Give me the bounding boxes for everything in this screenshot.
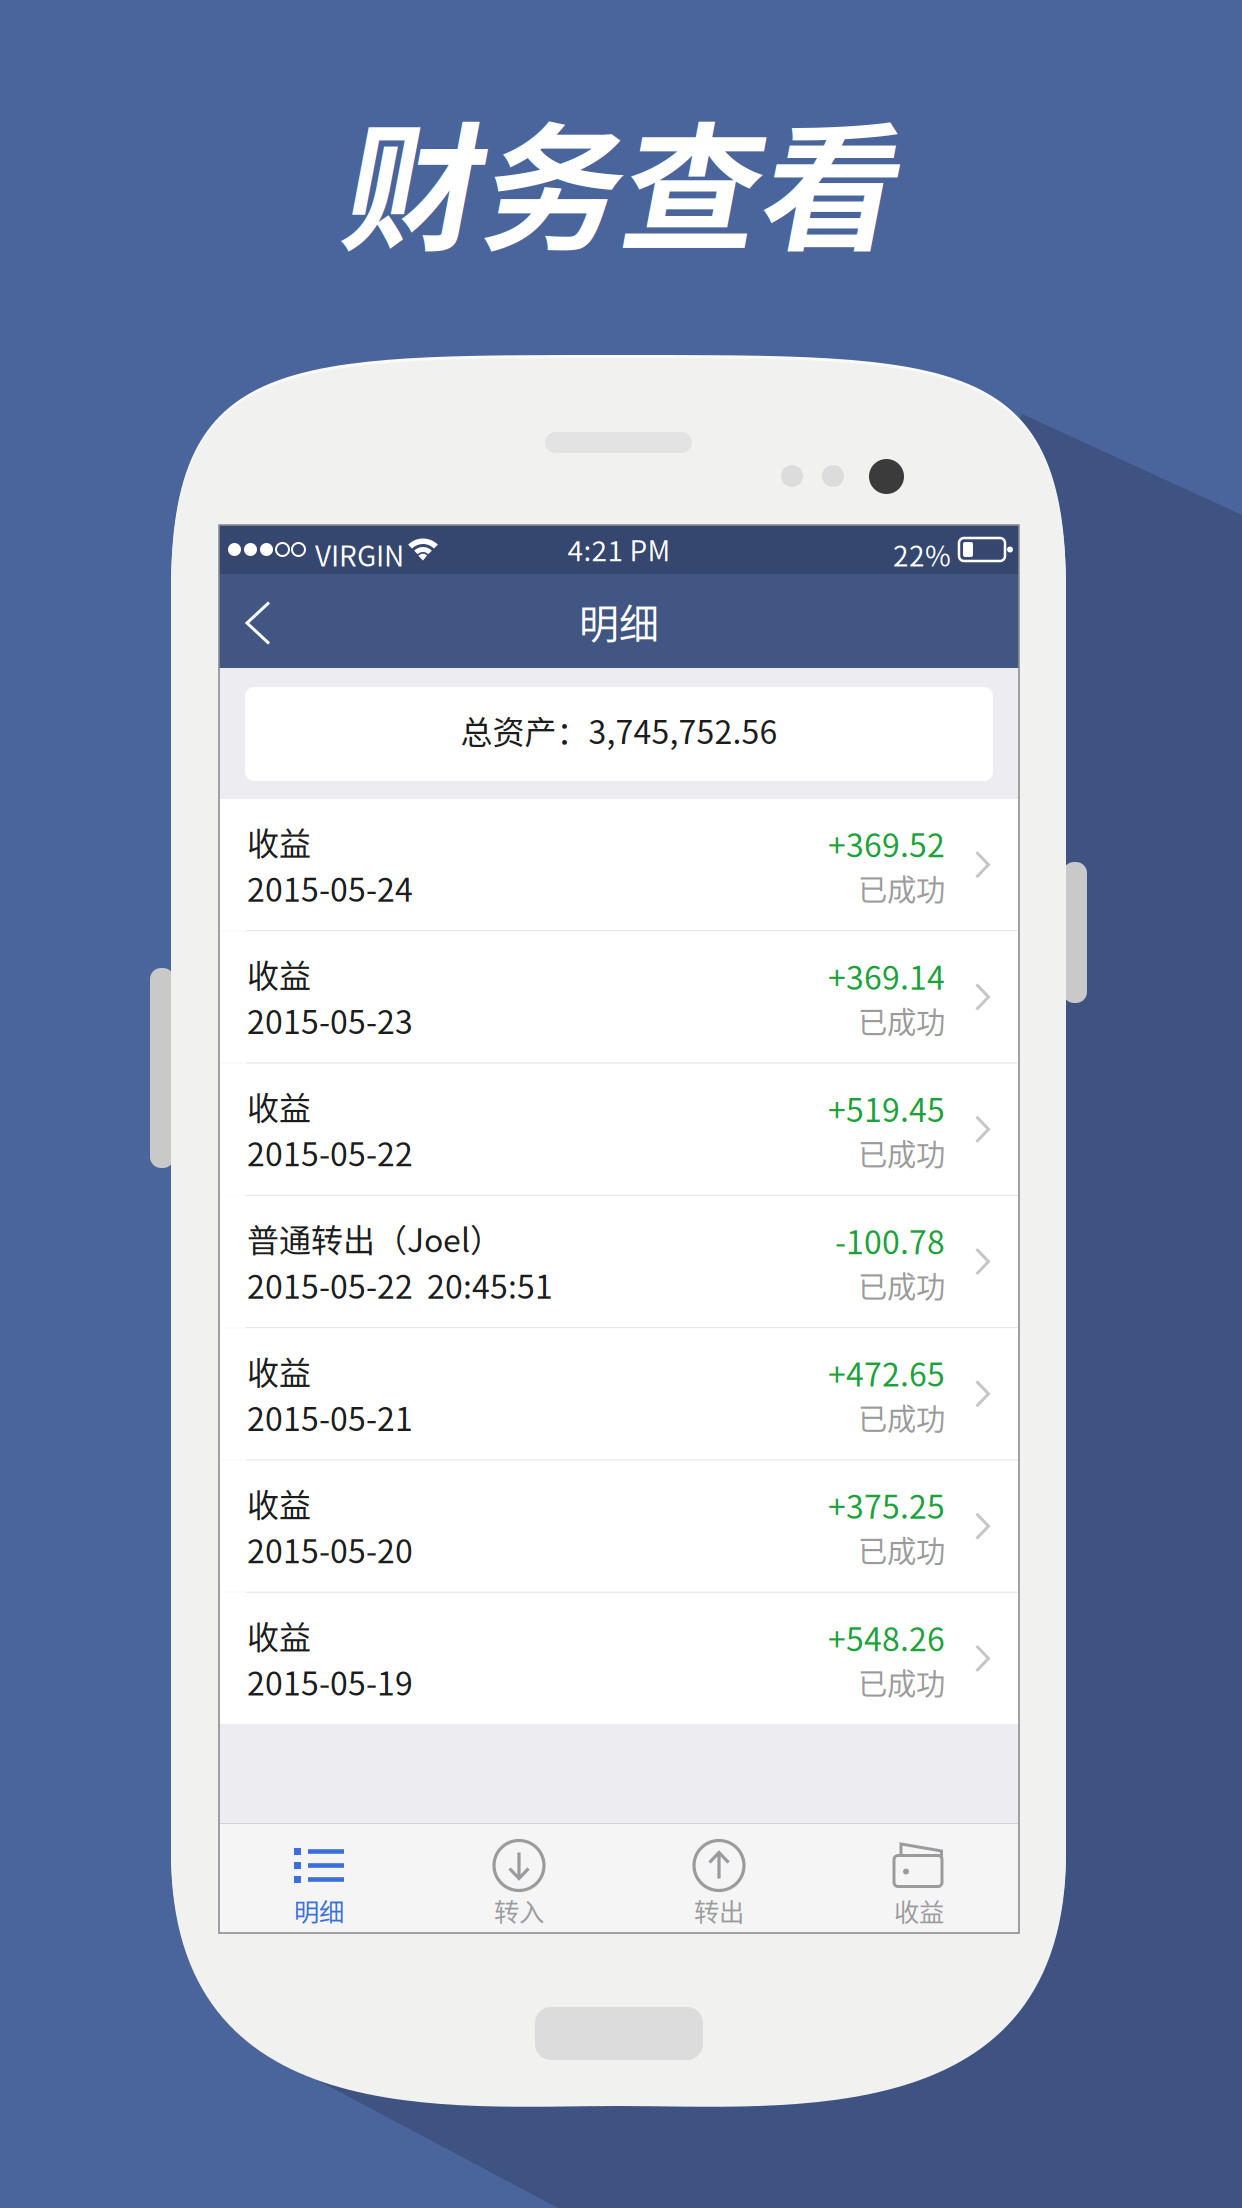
staticText: 已成功	[858, 1660, 945, 1703]
staticText: 2015-05-21	[247, 1394, 413, 1440]
staticText: 收益	[247, 818, 311, 865]
staticText: -100.78	[835, 1217, 945, 1263]
button[interactable]: 收益	[219, 1328, 1019, 1459]
staticText: 2015-05-24	[247, 865, 413, 911]
staticText: 转出	[694, 1892, 744, 1929]
staticText: 已成功	[858, 1528, 945, 1571]
staticText: 2015-05-22 20:45:51	[247, 1262, 553, 1308]
staticText: 转入	[494, 1892, 544, 1929]
staticText: +369.52	[828, 820, 945, 866]
button[interactable]: 转出	[619, 1823, 819, 1933]
staticText: 收益	[894, 1892, 944, 1929]
staticText: 已成功	[858, 1396, 945, 1438]
staticText: 2015-05-20	[247, 1526, 413, 1572]
staticText: +375.25	[828, 1482, 945, 1528]
button[interactable]: 收益	[219, 931, 1019, 1063]
staticText: 收益	[247, 1612, 311, 1658]
staticText: 已成功	[858, 1263, 945, 1306]
staticText: 收益	[247, 1083, 311, 1129]
button[interactable]: 收益	[219, 799, 1019, 930]
staticText: 明细	[294, 1892, 344, 1929]
staticText: 2015-05-19	[247, 1658, 413, 1705]
button[interactable]: 收益	[219, 1593, 1019, 1724]
staticText: 2015-05-22	[247, 1129, 413, 1175]
staticText: 收益	[247, 1480, 311, 1526]
button[interactable]: 收益	[219, 1460, 1019, 1592]
button[interactable]: 明细	[219, 1823, 419, 1933]
button[interactable]: 转入	[419, 1823, 619, 1933]
staticText: 财务查看	[346, 105, 902, 269]
staticText: VIRGIN	[315, 534, 404, 574]
staticText: 已成功	[858, 1131, 945, 1174]
staticText: 明细	[579, 592, 659, 650]
staticText: 普通转出（Joel）	[247, 1215, 502, 1261]
staticText: +519.45	[828, 1085, 945, 1131]
button[interactable]: Back	[219, 574, 297, 668]
staticText: 22%	[893, 534, 951, 574]
staticText: +472.65	[828, 1349, 945, 1396]
button[interactable]: 收益	[819, 1823, 1019, 1933]
staticText: 总资产：3,745,752.56	[460, 707, 777, 753]
staticText: 收益	[247, 951, 311, 997]
staticText: 已成功	[858, 999, 945, 1041]
staticText: +548.26	[828, 1614, 945, 1660]
staticText: 4:21 PM	[567, 529, 670, 569]
staticText: 收益	[247, 1347, 311, 1394]
button[interactable]: 收益	[219, 1064, 1019, 1195]
button[interactable]: 普通转出（Joel）	[219, 1196, 1019, 1327]
staticText: 已成功	[858, 867, 945, 909]
staticText: 2015-05-23	[247, 997, 413, 1043]
staticText: +369.14	[828, 952, 945, 999]
